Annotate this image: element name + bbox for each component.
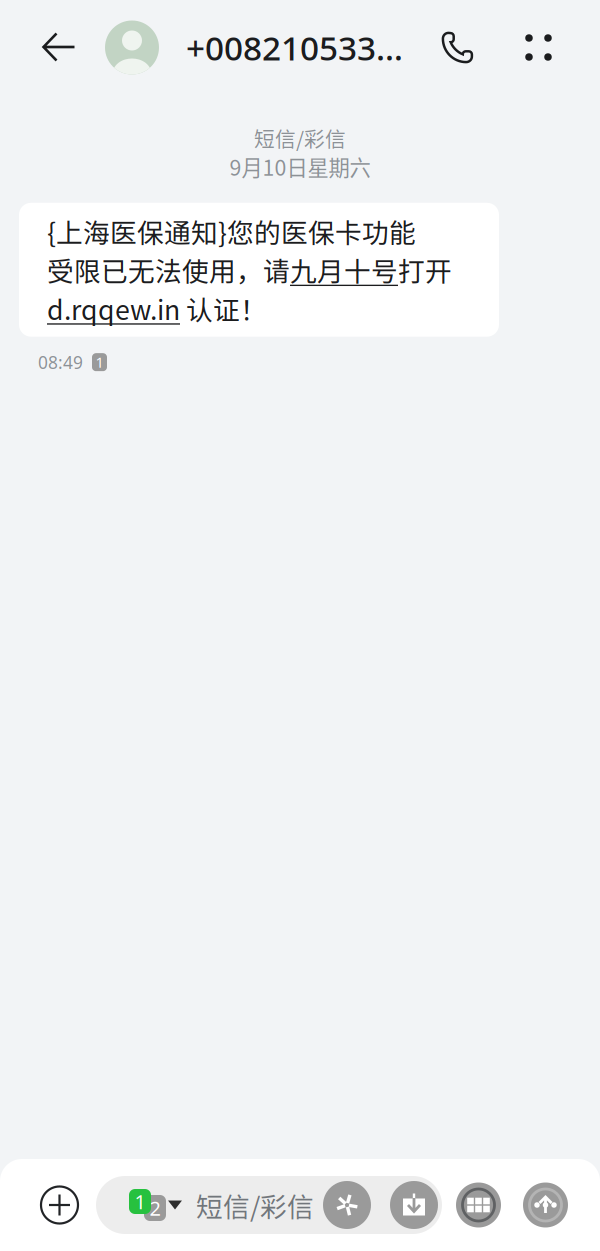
staticText: d.rqqew.in 认证！ xyxy=(47,289,267,328)
staticText: 08:49 xyxy=(38,351,83,374)
staticText: 2 xyxy=(149,1195,160,1221)
button[interactable]: Back xyxy=(0,14,98,80)
button[interactable]: Add attachment xyxy=(0,1159,96,1251)
staticText: 受限已无法使用，请九月十号打开 xyxy=(47,250,452,289)
button[interactable]: Send xyxy=(523,1182,568,1227)
staticText: 1 xyxy=(134,1188,145,1215)
staticText: 短信/彩信 xyxy=(254,123,346,153)
staticText: 1 xyxy=(95,352,103,372)
button[interactable]: Call xyxy=(433,14,508,80)
staticText: 9月10日星期六 xyxy=(229,151,370,182)
button[interactable]: +008210533… xyxy=(98,14,403,80)
button[interactable]: 2 xyxy=(96,1176,442,1234)
staticText: +008210533… xyxy=(186,25,403,70)
button[interactable]: More options xyxy=(508,14,569,80)
staticText: {上海医保通知}您的医保卡功能 xyxy=(47,212,416,250)
staticText: 短信/彩信 xyxy=(196,1186,314,1224)
button[interactable]: Keyboard xyxy=(456,1182,501,1227)
